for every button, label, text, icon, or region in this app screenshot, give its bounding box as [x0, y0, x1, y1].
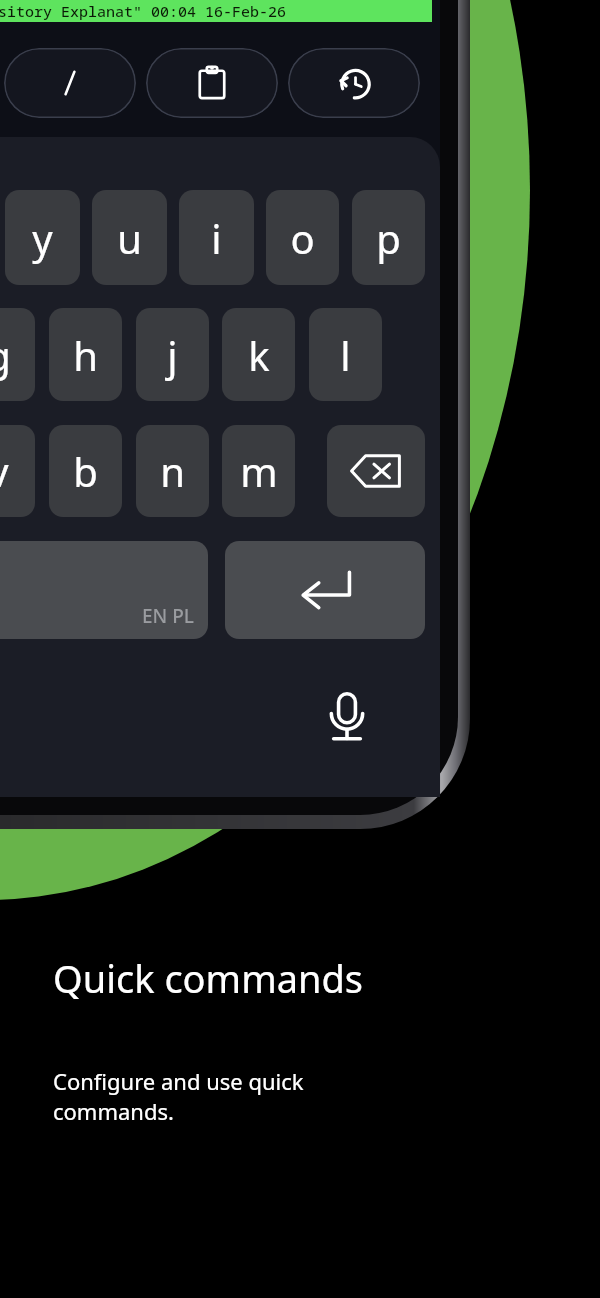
staticText: o — [290, 211, 315, 265]
button[interactable]: l — [309, 308, 382, 401]
button[interactable]: m — [222, 425, 295, 517]
staticText: EN PL — [142, 603, 195, 629]
staticText: sitory Explanat" 00:04 16-Feb-26 — [0, 1, 287, 21]
staticText: Configure and use quick commands. — [53, 1066, 304, 1126]
staticText: y — [32, 211, 53, 265]
button[interactable]: j — [136, 308, 209, 401]
button[interactable]: o — [266, 190, 339, 285]
button[interactable]: Command history — [288, 48, 420, 118]
button[interactable]: Paste from clipboard — [146, 48, 278, 118]
button[interactable]: h — [49, 308, 122, 401]
staticText: l — [340, 328, 351, 382]
staticText: n — [160, 444, 185, 498]
button[interactable]: n — [136, 425, 209, 517]
button[interactable]: y — [5, 190, 80, 285]
button[interactable]: v — [0, 425, 35, 517]
button[interactable]: b — [49, 425, 122, 517]
button[interactable]: Backspace — [327, 425, 425, 517]
staticText: g — [0, 328, 11, 382]
button[interactable]: u — [92, 190, 167, 285]
button[interactable]: EN PL — [0, 541, 208, 639]
button[interactable]: Enter — [225, 541, 425, 639]
button[interactable]: k — [222, 308, 295, 401]
button[interactable]: g — [0, 308, 35, 401]
button[interactable]: p — [352, 190, 425, 285]
staticText: p — [376, 211, 401, 265]
staticText: k — [248, 328, 270, 382]
staticText: h — [73, 328, 98, 382]
staticText: j — [167, 328, 178, 382]
staticText: u — [117, 211, 142, 265]
staticText: v — [0, 444, 9, 498]
staticText: m — [240, 444, 278, 498]
button[interactable]: Voice input — [310, 680, 384, 754]
staticText: Quick commands — [53, 952, 364, 1004]
staticText: i — [211, 211, 222, 265]
staticText: b — [73, 444, 98, 498]
button[interactable]: Slash command — [4, 48, 136, 118]
button[interactable]: i — [179, 190, 254, 285]
